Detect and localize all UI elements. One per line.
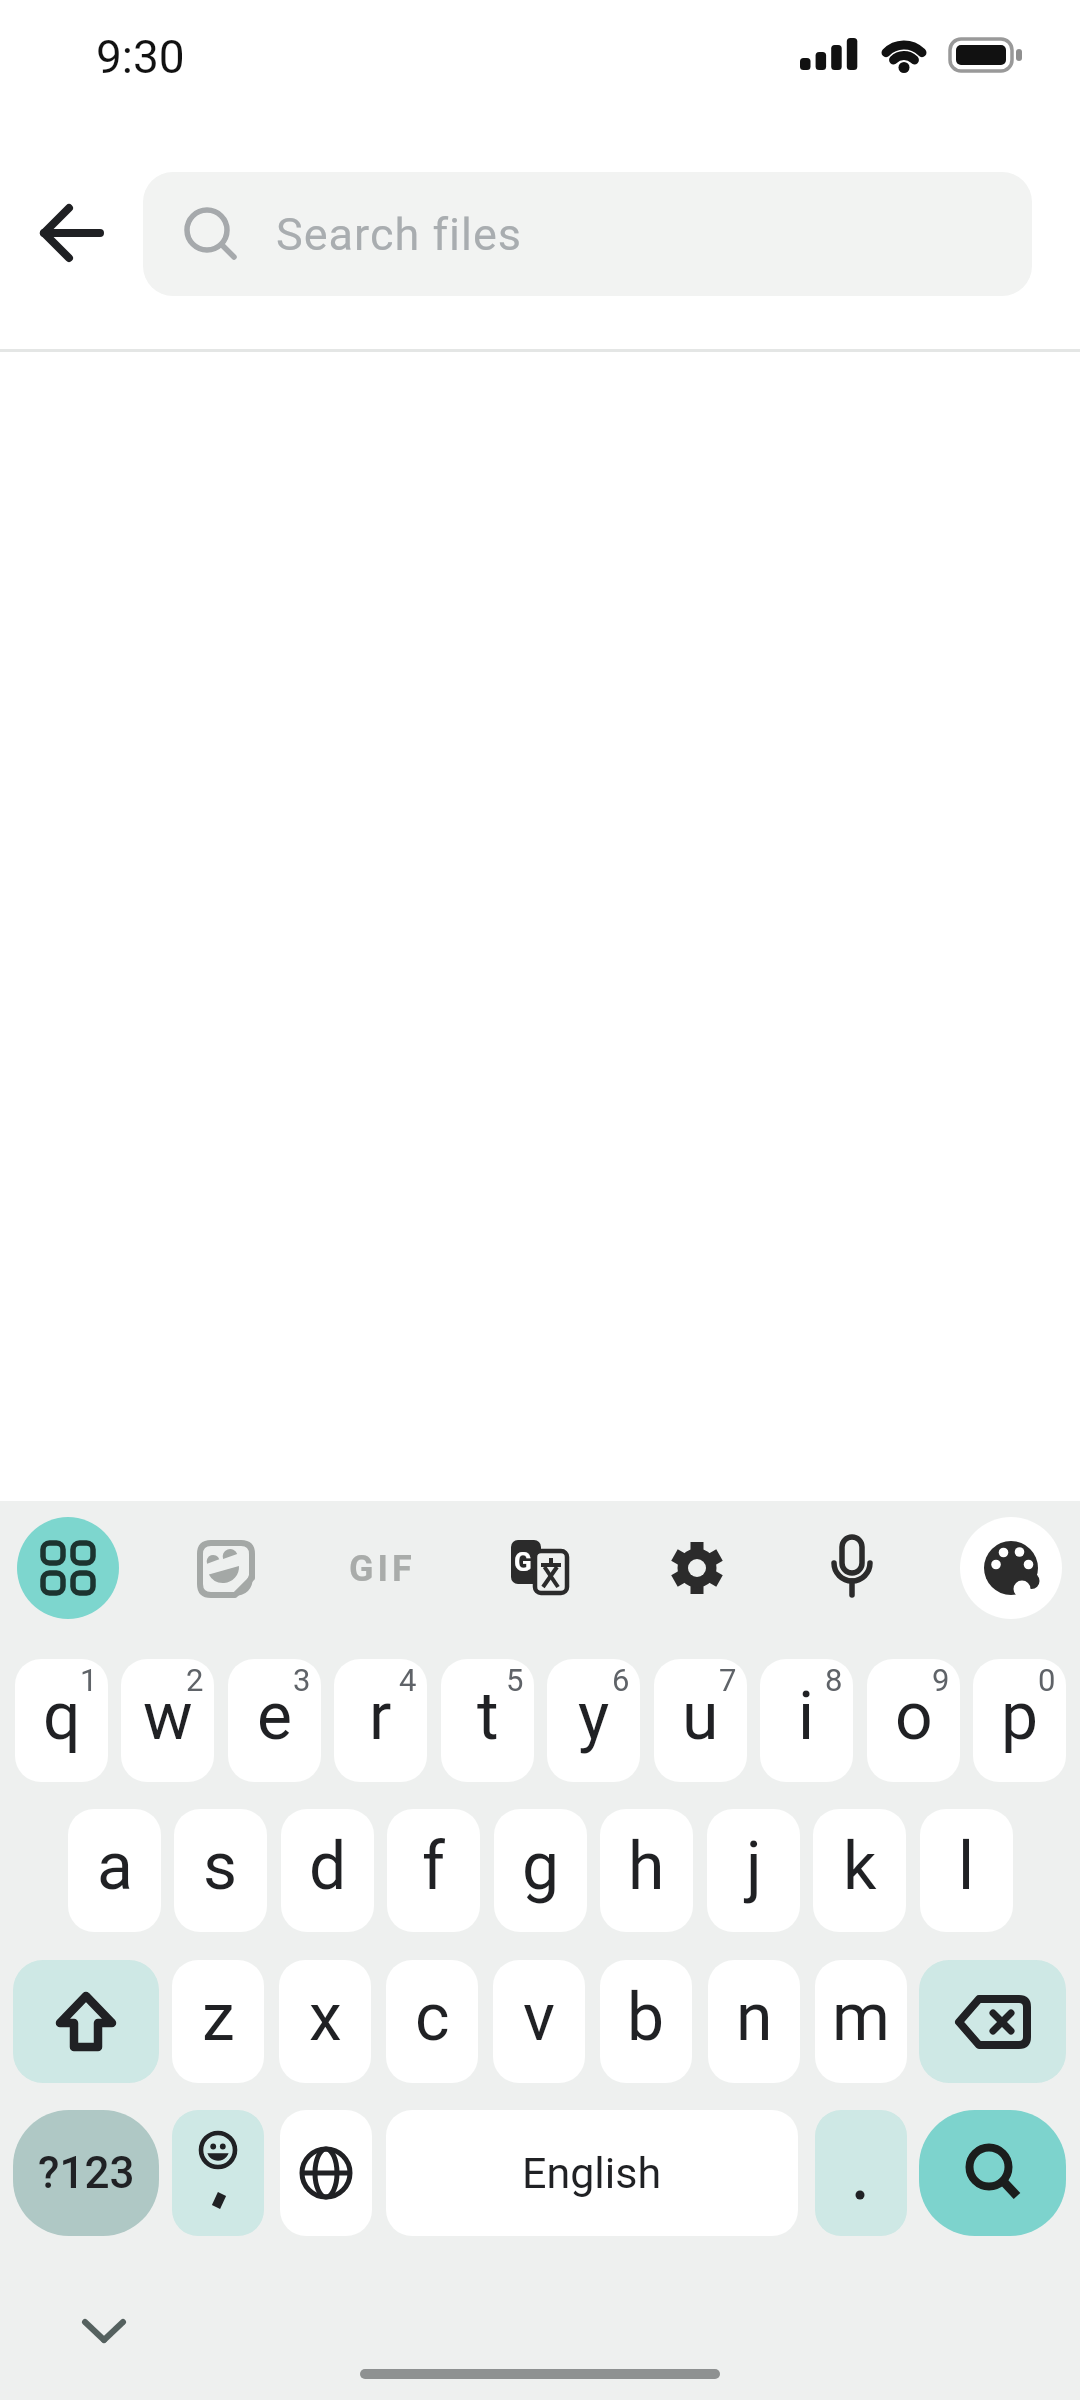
button[interactable] <box>919 2110 1066 2236</box>
staticText: 4 <box>399 1662 417 1698</box>
button[interactable] <box>172 2110 264 2236</box>
staticText: English <box>522 2148 662 2198</box>
button[interactable]: k <box>813 1809 906 1932</box>
staticText: s <box>203 1828 238 1905</box>
staticText: g <box>522 1828 560 1905</box>
staticText: 5 <box>506 1662 524 1698</box>
staticText: 9:30 <box>96 30 185 84</box>
staticText: i <box>798 1678 815 1755</box>
button[interactable] <box>960 1517 1062 1619</box>
staticText: r <box>369 1678 392 1755</box>
staticText: w <box>143 1678 193 1755</box>
button[interactable]: G <box>511 1540 569 1598</box>
staticText: G <box>514 1547 532 1577</box>
staticText: k <box>843 1828 877 1905</box>
button[interactable]: y <box>547 1659 640 1782</box>
button[interactable]: English <box>386 2110 798 2236</box>
staticText: z <box>202 1979 235 2056</box>
button[interactable]: d <box>281 1809 374 1932</box>
button[interactable]: z <box>172 1960 264 2083</box>
staticText: j <box>746 1828 762 1905</box>
button[interactable]: GIF <box>330 1540 435 1598</box>
button[interactable]: h <box>600 1809 693 1932</box>
button[interactable]: x <box>279 1960 371 2083</box>
staticText: d <box>309 1828 347 1905</box>
staticText: e <box>257 1678 292 1755</box>
staticText: l <box>958 1828 975 1905</box>
button[interactable]: p <box>973 1659 1066 1782</box>
staticText: t <box>477 1678 499 1755</box>
staticText: 2 <box>186 1662 204 1698</box>
staticText: h <box>628 1828 665 1905</box>
button[interactable] <box>17 1517 119 1619</box>
staticText: c <box>415 1979 450 2056</box>
button[interactable]: l <box>920 1809 1013 1932</box>
button[interactable]: a <box>68 1809 161 1932</box>
staticText: n <box>736 1979 773 2056</box>
button[interactable] <box>280 2110 372 2236</box>
button[interactable]: o <box>867 1659 960 1782</box>
button[interactable] <box>197 1540 255 1598</box>
staticText: b <box>627 1979 665 2056</box>
staticText: 7 <box>719 1662 737 1698</box>
staticText: v <box>523 1979 555 2056</box>
staticText: 6 <box>612 1662 630 1698</box>
button[interactable]: m <box>815 1960 907 2083</box>
staticText: GIF <box>349 1548 416 1590</box>
staticText: p <box>1001 1678 1039 1755</box>
staticText: 8 <box>825 1662 843 1698</box>
button[interactable] <box>82 2316 126 2346</box>
button[interactable] <box>13 1960 159 2083</box>
staticText: 1 <box>80 1662 98 1698</box>
button[interactable]: w <box>121 1659 214 1782</box>
button[interactable] <box>30 193 110 273</box>
button[interactable]: b <box>600 1960 692 2083</box>
staticText: ?123 <box>38 2147 135 2199</box>
button[interactable]: ?123 <box>13 2110 159 2236</box>
button[interactable]: c <box>386 1960 478 2083</box>
button[interactable]: e <box>228 1659 321 1782</box>
button[interactable] <box>671 1542 723 1594</box>
button[interactable]: q <box>15 1659 108 1782</box>
staticText: u <box>682 1678 719 1755</box>
button[interactable]: u <box>654 1659 747 1782</box>
staticText: q <box>43 1678 81 1755</box>
button[interactable]: r <box>334 1659 427 1782</box>
staticText: m <box>832 1979 890 2056</box>
button[interactable]: s <box>174 1809 267 1932</box>
staticText: o <box>895 1678 933 1755</box>
button[interactable]: v <box>493 1960 585 2083</box>
button[interactable] <box>919 1960 1066 2083</box>
button[interactable] <box>815 2110 907 2236</box>
staticText: y <box>578 1678 610 1755</box>
button[interactable]: Search files <box>143 172 1032 296</box>
button[interactable]: g <box>494 1809 587 1932</box>
button[interactable] <box>828 1535 876 1601</box>
staticText: 3 <box>293 1662 311 1698</box>
staticText: Search files <box>276 208 523 261</box>
button[interactable]: n <box>708 1960 800 2083</box>
staticText: f <box>422 1828 445 1905</box>
button[interactable]: j <box>707 1809 800 1932</box>
button[interactable]: i <box>760 1659 853 1782</box>
staticText: 9 <box>932 1662 950 1698</box>
staticText: a <box>97 1828 133 1905</box>
button[interactable]: t <box>441 1659 534 1782</box>
staticText: x <box>309 1979 342 2056</box>
staticText: 0 <box>1038 1662 1056 1698</box>
button[interactable]: f <box>387 1809 480 1932</box>
